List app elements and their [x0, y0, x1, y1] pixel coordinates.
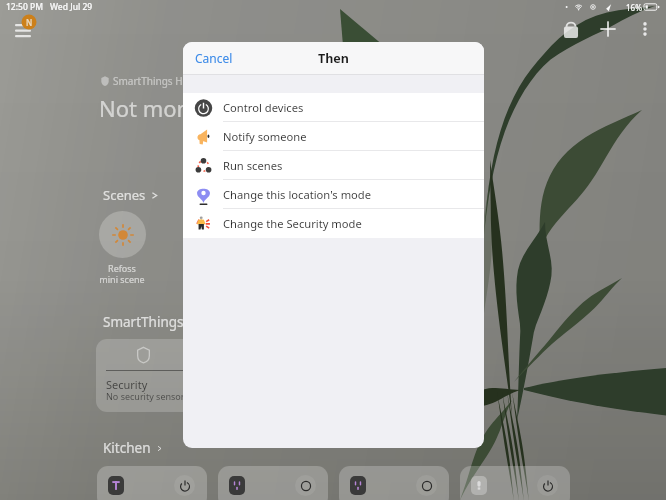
button[interactable]: Notify someone: [183, 122, 484, 151]
button[interactable]: [97, 466, 207, 500]
staticText: Run scenes: [223, 158, 283, 173]
staticText: SmartThings Home: [103, 313, 226, 331]
staticText: Refoss mini scene: [99, 262, 145, 286]
staticText: Notify someone: [223, 129, 307, 144]
staticText: Cancel: [195, 50, 233, 66]
staticText: Kitchen: [103, 439, 151, 457]
staticText: No security sensors: [106, 390, 189, 402]
button[interactable]: Shop: [555, 13, 587, 45]
staticText: Change this location's mode: [223, 187, 372, 202]
button[interactable]: [218, 466, 328, 500]
staticText: 16%: [626, 2, 642, 13]
button[interactable]: [99, 211, 146, 258]
staticText: N: [26, 17, 33, 28]
button[interactable]: Change this location's mode: [183, 180, 484, 209]
button[interactable]: Security: [96, 339, 206, 412]
button[interactable]: Control devices: [183, 93, 484, 122]
button[interactable]: Change the Security mode: [183, 209, 484, 238]
staticText: Security: [106, 377, 148, 392]
staticText: Not monitoring: [99, 93, 259, 123]
button[interactable]: Menu: [8, 14, 42, 48]
button[interactable]: Run scenes: [183, 151, 484, 180]
button[interactable]: More options: [629, 13, 661, 45]
button[interactable]: Add: [592, 13, 624, 45]
staticText: Wed Jul 29: [50, 1, 93, 13]
button[interactable]: Cancel: [191, 46, 237, 70]
button[interactable]: [460, 466, 570, 500]
staticText: Control devices: [223, 100, 304, 115]
staticText: 12:50 PM: [6, 1, 43, 13]
button[interactable]: Kitchen: [103, 439, 162, 457]
staticText: Scenes: [103, 186, 146, 204]
staticText: SmartThings Home: [113, 74, 204, 88]
button[interactable]: [339, 466, 449, 500]
staticText: Then: [318, 50, 349, 67]
button[interactable]: Scenes: [103, 186, 158, 204]
staticText: Change the Security mode: [223, 216, 362, 231]
